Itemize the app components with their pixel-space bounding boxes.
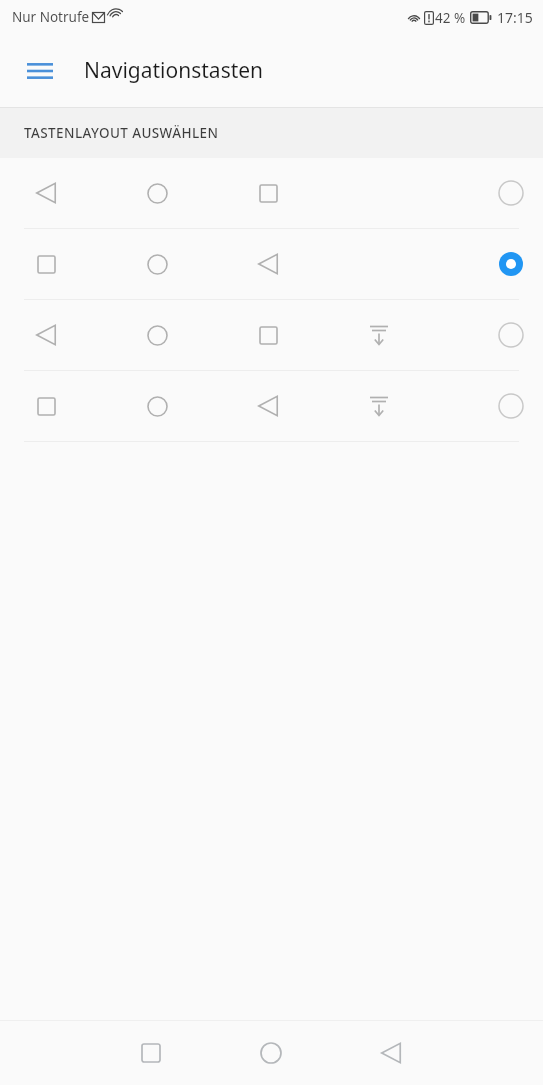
- button[interactable]: [0, 371, 543, 441]
- button[interactable]: [0, 300, 543, 370]
- button[interactable]: Recents: [105, 1021, 197, 1085]
- button[interactable]: [0, 229, 543, 299]
- staticText: 17:15: [497, 8, 533, 27]
- button[interactable]: Home: [225, 1021, 317, 1085]
- staticText: Nur Notrufe: [12, 8, 90, 26]
- staticText: TASTENLAYOUT AUSWÄHLEN: [24, 124, 219, 142]
- staticText: 42 %: [435, 9, 466, 27]
- button[interactable]: Menu: [16, 47, 64, 95]
- button[interactable]: Back: [345, 1021, 437, 1085]
- staticText: Navigationstasten: [84, 56, 264, 85]
- button[interactable]: [0, 158, 543, 228]
